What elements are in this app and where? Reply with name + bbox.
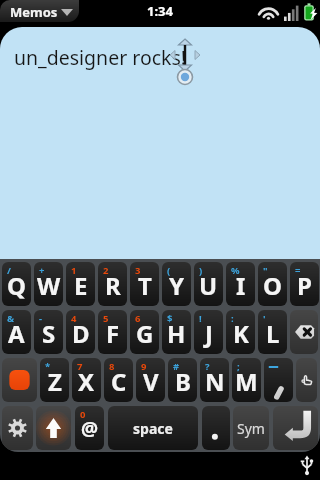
button[interactable]: = bbox=[290, 262, 319, 306]
button[interactable]: Sym bbox=[233, 406, 269, 450]
staticText: / bbox=[7, 264, 11, 277]
staticText: J bbox=[205, 317, 213, 350]
button[interactable]: % bbox=[226, 262, 255, 306]
button[interactable]: Shift bbox=[36, 406, 71, 450]
button[interactable]: ) bbox=[194, 262, 223, 306]
staticText: @ bbox=[81, 416, 99, 442]
staticText: N bbox=[205, 365, 225, 398]
staticText: $ bbox=[167, 312, 173, 325]
button[interactable]: 1 bbox=[66, 262, 95, 306]
button[interactable]: $ bbox=[162, 310, 191, 354]
button[interactable]: 5 bbox=[98, 310, 127, 354]
button[interactable]: 0 bbox=[75, 406, 104, 450]
staticText: I bbox=[236, 269, 246, 302]
staticText: - bbox=[39, 312, 43, 325]
staticText: 3 bbox=[135, 264, 141, 277]
staticText: X bbox=[78, 365, 95, 398]
staticText: space bbox=[133, 419, 173, 438]
staticText: F bbox=[106, 317, 120, 350]
staticText: un_designer rocks! bbox=[14, 44, 187, 71]
button[interactable]: Enter bbox=[273, 406, 318, 450]
staticText: Z bbox=[48, 365, 62, 398]
staticText: O bbox=[263, 269, 282, 302]
staticText: V bbox=[143, 365, 159, 398]
staticText: G bbox=[136, 317, 154, 350]
staticText: Memos bbox=[10, 3, 58, 21]
staticText: 4 bbox=[71, 312, 77, 325]
button[interactable]: ! bbox=[194, 310, 223, 354]
button[interactable]: Memos bbox=[0, 0, 79, 22]
staticText: % bbox=[231, 264, 240, 277]
staticText: = bbox=[295, 264, 301, 277]
staticText: 6 bbox=[135, 312, 141, 325]
button[interactable]: Comma bbox=[264, 358, 293, 402]
staticText: ( bbox=[167, 264, 171, 277]
button[interactable]: Settings bbox=[2, 406, 33, 450]
staticText: M bbox=[235, 365, 258, 398]
staticText: Sym bbox=[237, 419, 265, 438]
staticText: 1:34 bbox=[147, 2, 173, 20]
staticText: ? bbox=[205, 360, 210, 373]
staticText: C bbox=[111, 365, 127, 398]
staticText: ! bbox=[199, 312, 202, 325]
button[interactable]: / bbox=[2, 262, 31, 306]
button[interactable]: 3 bbox=[130, 262, 159, 306]
staticText: H bbox=[167, 317, 186, 350]
staticText: Y bbox=[169, 269, 185, 302]
staticText: 0 bbox=[80, 408, 86, 421]
staticText: & bbox=[7, 312, 15, 325]
button[interactable]: ( bbox=[162, 262, 191, 306]
button[interactable]: Period bbox=[202, 406, 230, 450]
button[interactable]: 8 bbox=[104, 358, 133, 402]
button[interactable]: 4 bbox=[66, 310, 95, 354]
button[interactable]: Caps lock bbox=[2, 358, 37, 402]
button[interactable]: ' bbox=[258, 310, 287, 354]
button[interactable]: " bbox=[258, 262, 287, 306]
button[interactable]: ? bbox=[200, 358, 229, 402]
button[interactable]: - bbox=[34, 310, 63, 354]
staticText: A bbox=[8, 317, 25, 350]
staticText: : bbox=[231, 312, 234, 325]
staticText: W bbox=[37, 269, 61, 302]
staticText: 7 bbox=[77, 360, 83, 373]
staticText: P bbox=[297, 269, 312, 302]
staticText: * bbox=[45, 360, 51, 373]
staticText: ) bbox=[199, 264, 203, 277]
button[interactable]: Backspace bbox=[290, 310, 318, 354]
staticText: 9 bbox=[141, 360, 147, 373]
staticText: 5 bbox=[103, 312, 109, 325]
button[interactable]: + bbox=[34, 262, 63, 306]
button[interactable]: 6 bbox=[130, 310, 159, 354]
staticText: E bbox=[74, 269, 88, 302]
button[interactable]: * bbox=[40, 358, 69, 402]
staticText: S bbox=[42, 317, 56, 350]
staticText: Q bbox=[7, 269, 26, 302]
staticText: R bbox=[105, 269, 121, 302]
staticText: U bbox=[199, 269, 218, 302]
staticText: " bbox=[263, 264, 268, 277]
staticText: T bbox=[138, 269, 152, 302]
staticText: K bbox=[233, 317, 249, 350]
button[interactable]: # bbox=[168, 358, 197, 402]
staticText: L bbox=[266, 317, 280, 350]
staticText: + bbox=[39, 264, 45, 277]
button[interactable]: 9 bbox=[136, 358, 165, 402]
staticText: B bbox=[175, 365, 191, 398]
button[interactable]: & bbox=[2, 310, 31, 354]
staticText: 2 bbox=[103, 264, 109, 277]
button[interactable]: 2 bbox=[98, 262, 127, 306]
staticText: # bbox=[173, 360, 180, 373]
staticText: ; bbox=[237, 360, 240, 373]
button[interactable]: : bbox=[226, 310, 255, 354]
staticText: D bbox=[72, 317, 90, 350]
staticText: ' bbox=[263, 312, 266, 325]
staticText: 8 bbox=[109, 360, 115, 373]
staticText: 1 bbox=[71, 264, 77, 277]
button[interactable]: Pointer mode bbox=[296, 358, 317, 402]
button[interactable]: ; bbox=[232, 358, 261, 402]
button[interactable]: 7 bbox=[72, 358, 101, 402]
button[interactable]: un_designer rocks! bbox=[0, 27, 320, 259]
button[interactable]: space bbox=[108, 406, 198, 450]
